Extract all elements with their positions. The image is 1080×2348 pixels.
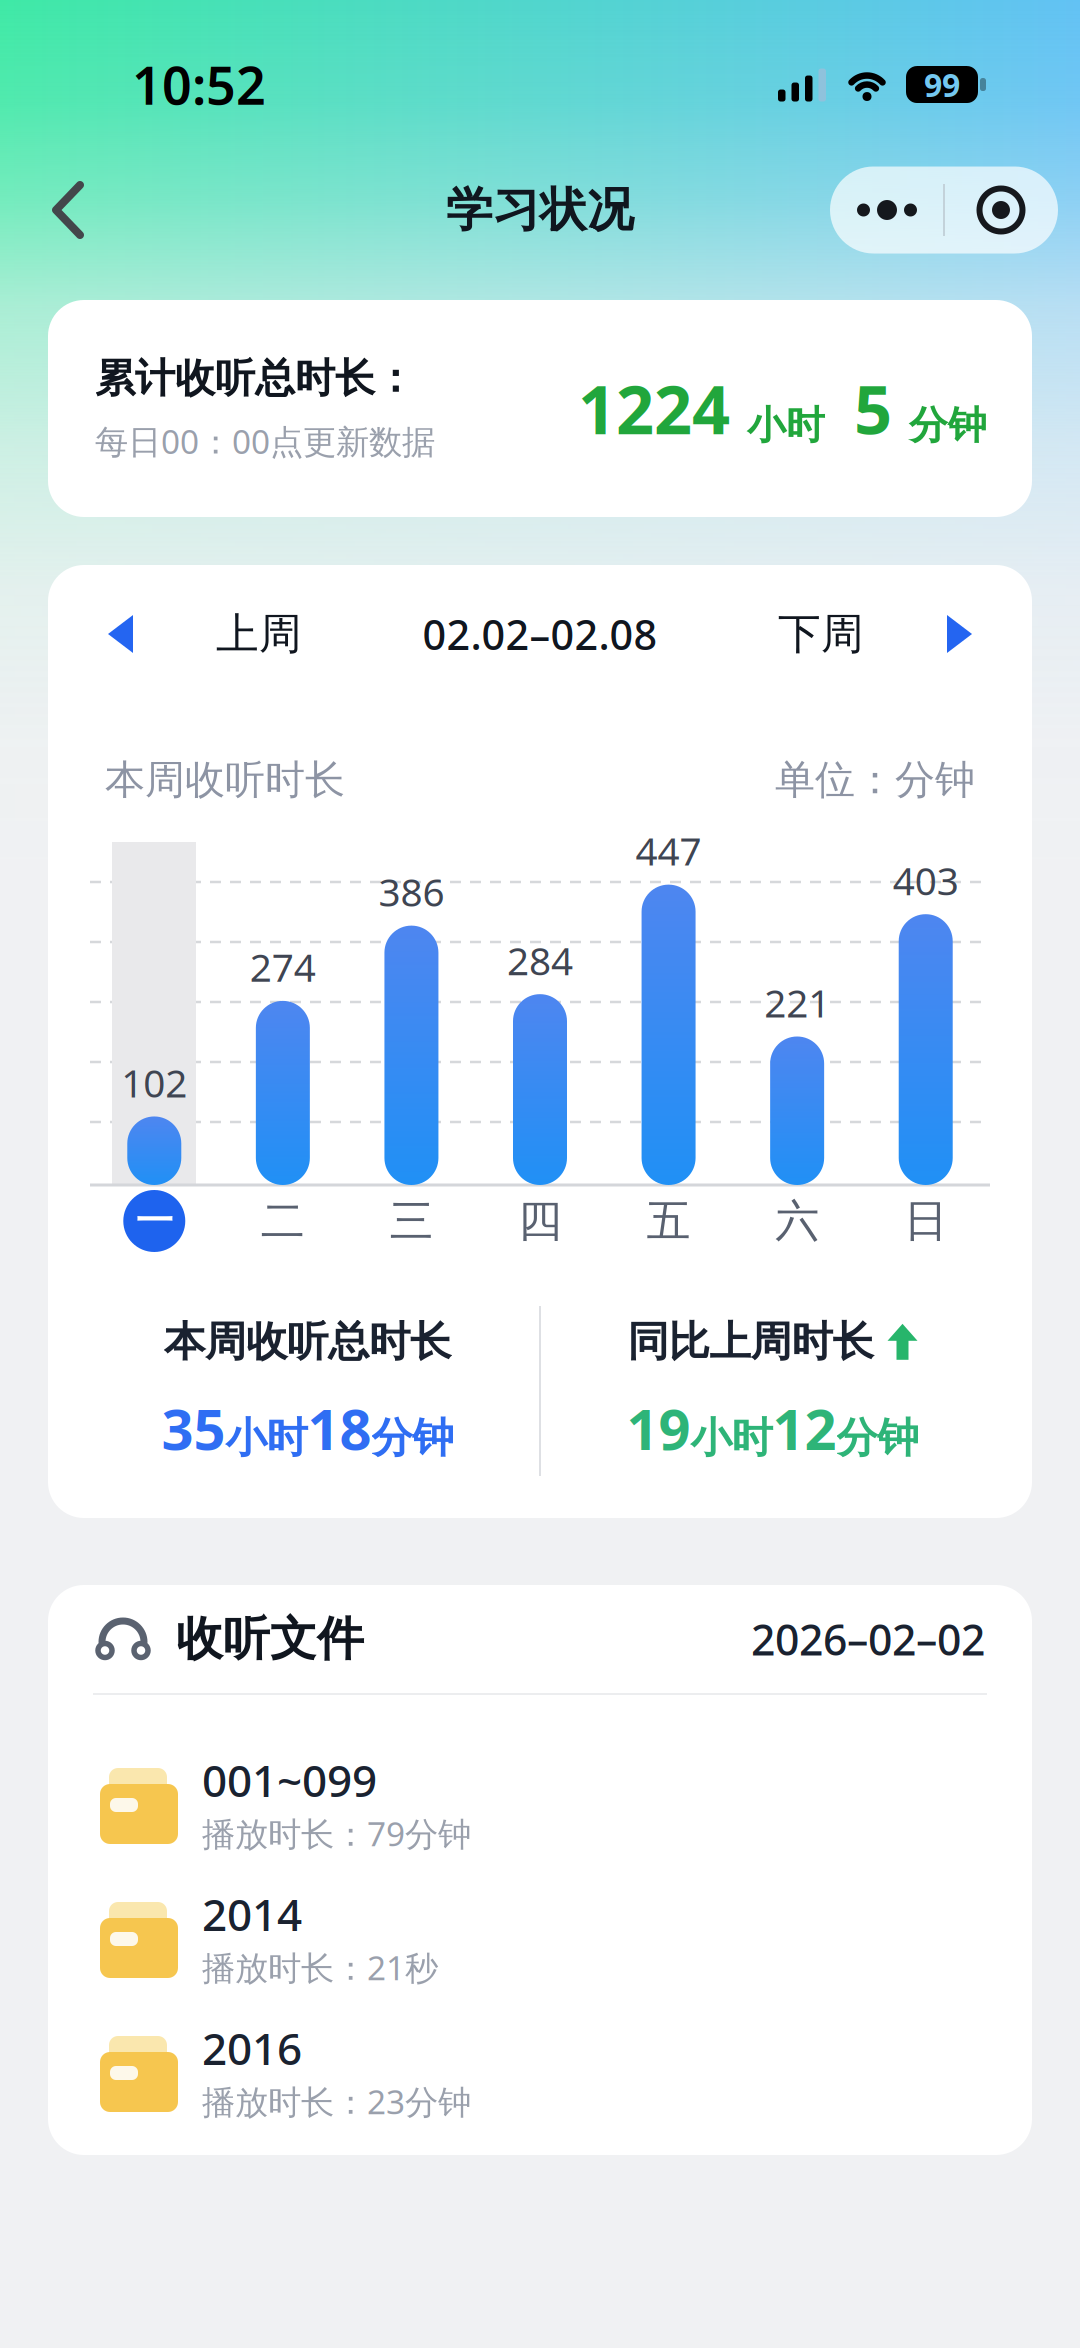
staticText: 102 [121, 1057, 187, 1108]
staticText: 284 [507, 934, 573, 986]
button[interactable]: More [830, 166, 944, 253]
staticText: 2014 [202, 1885, 302, 1943]
staticText: 学习状况 [446, 181, 634, 239]
staticText: 四 [518, 1194, 562, 1248]
button[interactable]: 五 [604, 1188, 733, 1254]
staticText: 播放时长：21秒 [202, 1945, 438, 1989]
button[interactable]: 001~099 [100, 1753, 985, 1853]
staticText: 下周 [778, 608, 864, 660]
staticText: 10:52 [132, 50, 266, 119]
staticText: 同比上周时长 [627, 1316, 873, 1367]
staticText: 收听文件 [176, 1610, 364, 1668]
staticText: 221 [764, 977, 830, 1028]
staticText: 二 [261, 1194, 305, 1248]
staticText: 1224 小时 5 分钟 [578, 364, 987, 453]
staticText: 日 [904, 1194, 948, 1248]
staticText: 35小时18分钟 [161, 1391, 453, 1466]
button[interactable]: 上周 [106, 608, 302, 660]
staticText: 播放时长：79分钟 [202, 1811, 471, 1855]
button[interactable]: 三 [347, 1188, 476, 1254]
staticText: 本周收听总时长 [164, 1316, 451, 1367]
staticText: 五 [647, 1194, 691, 1248]
staticText: 274 [250, 941, 316, 992]
button[interactable]: 下周 [778, 608, 974, 660]
button[interactable]: 六 [733, 1188, 861, 1254]
button[interactable]: Back [0, 163, 84, 257]
staticText: 播放时长：23分钟 [202, 2079, 471, 2123]
button[interactable]: Minimize [944, 166, 1058, 253]
staticText: 2016 [202, 2019, 302, 2077]
staticText: 2026–02–02 [751, 1611, 985, 1667]
staticText: 上周 [216, 608, 302, 660]
button[interactable]: 日 [861, 1188, 990, 1254]
staticText: 本周收听时长 [105, 755, 345, 804]
staticText: 19小时12分钟 [626, 1391, 918, 1466]
staticText: 一 [136, 1198, 173, 1244]
staticText: 99 [924, 63, 960, 106]
button[interactable]: 2014 [100, 1887, 985, 1987]
staticText: 447 [636, 825, 702, 876]
staticText: 403 [893, 854, 959, 906]
button[interactable]: 2016 [100, 2021, 985, 2121]
staticText: 三 [389, 1194, 433, 1248]
button[interactable]: 一 [90, 1188, 219, 1254]
staticText: 001~099 [202, 1751, 377, 1809]
staticText: 02.02–02.08 [422, 607, 657, 661]
staticText: 386 [378, 866, 444, 917]
staticText: 每日00：00点更新数据 [95, 419, 435, 463]
button[interactable]: 二 [219, 1188, 347, 1254]
button[interactable]: 四 [476, 1188, 604, 1254]
staticText: 单位：分钟 [775, 755, 975, 804]
staticText: 累计收听总时长： [95, 354, 415, 403]
staticText: 六 [775, 1194, 819, 1248]
